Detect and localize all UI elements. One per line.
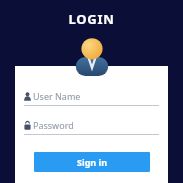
button[interactable]: Sign in (34, 152, 150, 172)
staticText: LOGIN (0, 10, 183, 28)
other: User avatar (74, 38, 110, 76)
button[interactable]: Password (24, 119, 159, 135)
staticText: Sign in (77, 156, 108, 168)
staticText: Password (33, 119, 74, 131)
staticText: User Name (33, 90, 81, 102)
button[interactable]: User Name (24, 90, 159, 106)
